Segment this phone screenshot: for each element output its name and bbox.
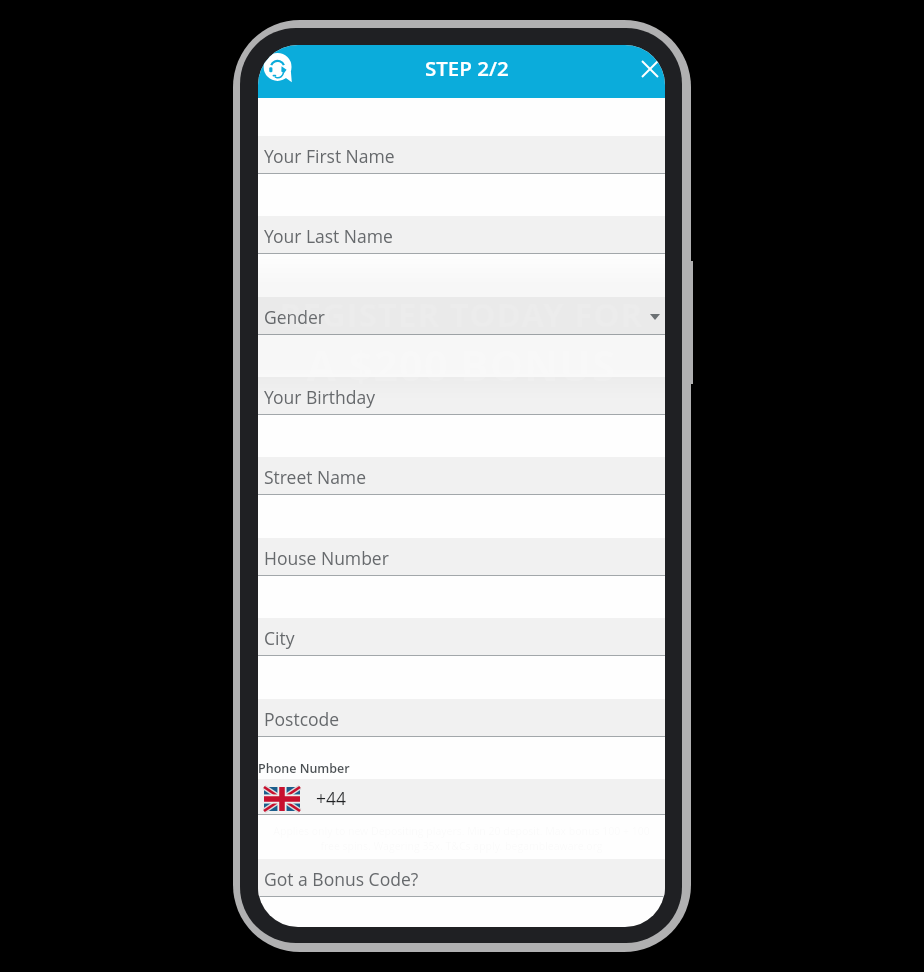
staticText: REGISTER TODAY FOR bbox=[258, 292, 665, 337]
button[interactable]: Your First Name bbox=[258, 136, 665, 174]
staticText: +44 bbox=[316, 786, 347, 810]
button[interactable]: Gender bbox=[258, 297, 665, 335]
staticText: Street Name bbox=[264, 465, 366, 489]
staticText: Phone Number bbox=[258, 760, 350, 777]
button[interactable]: Support chat bbox=[263, 53, 294, 84]
staticText: Your First Name bbox=[264, 144, 395, 168]
button[interactable]: City bbox=[258, 618, 665, 656]
button[interactable]: Close bbox=[637, 56, 663, 82]
staticText: Postcode bbox=[264, 707, 340, 731]
staticText: Got a Bonus Code? bbox=[264, 867, 419, 891]
staticText: House Number bbox=[264, 546, 389, 570]
staticText: Your Birthday bbox=[264, 385, 376, 409]
staticText: A $200 BONUS bbox=[258, 336, 665, 393]
staticText: Gender bbox=[264, 305, 325, 329]
button[interactable]: Your Last Name bbox=[258, 216, 665, 254]
button[interactable]: House Number bbox=[258, 538, 665, 576]
button[interactable]: Postcode bbox=[258, 699, 665, 737]
staticText: STEP 2/2 bbox=[425, 54, 509, 82]
staticText: Your Last Name bbox=[264, 224, 393, 248]
button[interactable]: Got a Bonus Code? bbox=[258, 859, 665, 897]
button[interactable]: Your Birthday bbox=[258, 377, 665, 415]
button[interactable]: Street Name bbox=[258, 457, 665, 495]
button[interactable]: +44 bbox=[258, 779, 665, 815]
staticText: City bbox=[264, 626, 295, 650]
